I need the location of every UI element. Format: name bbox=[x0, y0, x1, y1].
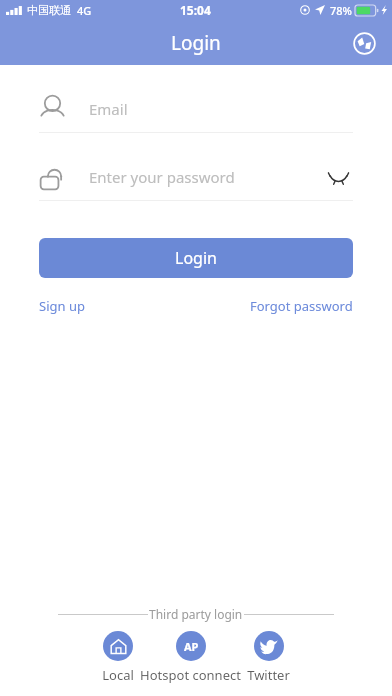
staticText: Sign up bbox=[39, 297, 85, 315]
button[interactable]: Sign up bbox=[39, 292, 85, 320]
staticText: 4G bbox=[77, 3, 92, 18]
staticText: 78% bbox=[330, 3, 352, 18]
button[interactable]: Email bbox=[39, 86, 353, 132]
staticText: Hotspot connect bbox=[140, 666, 241, 684]
button[interactable]: Hotspot connect login bbox=[137, 631, 244, 684]
staticText: Email bbox=[89, 99, 353, 119]
button[interactable]: Login bbox=[39, 238, 353, 278]
staticText: Third party login bbox=[149, 606, 243, 622]
button[interactable]: Language bbox=[347, 26, 381, 60]
staticText: Local bbox=[102, 666, 134, 684]
staticText: 中国联通 bbox=[27, 3, 71, 17]
staticText: Login bbox=[175, 247, 217, 269]
button[interactable]: Show password bbox=[323, 162, 353, 192]
button[interactable]: Twitter login bbox=[244, 631, 293, 684]
staticText: Enter your password bbox=[89, 167, 323, 187]
button[interactable]: Local login bbox=[99, 631, 137, 684]
staticText: Twitter bbox=[247, 666, 290, 684]
staticText: Forgot password bbox=[250, 297, 353, 315]
staticText: Login bbox=[171, 30, 221, 56]
button[interactable]: Forgot password bbox=[250, 292, 353, 320]
staticText: 15:04 bbox=[180, 2, 211, 18]
button[interactable]: Enter your password bbox=[39, 154, 353, 200]
staticText: AP bbox=[184, 639, 199, 654]
